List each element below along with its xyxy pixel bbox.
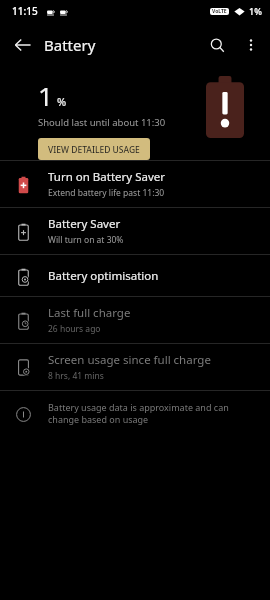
staticText: Extend battery life past 11:30 bbox=[48, 187, 165, 199]
staticText: Will turn on at 30% bbox=[48, 234, 124, 246]
button[interactable]: VIEW DETAILED USAGE bbox=[38, 138, 150, 160]
staticText: Battery Saver bbox=[48, 216, 121, 232]
staticText: 1 bbox=[38, 78, 53, 113]
button[interactable]: More options bbox=[234, 28, 268, 62]
button[interactable]: Screen usage since full charge bbox=[0, 344, 270, 390]
button[interactable]: Search bbox=[200, 28, 234, 62]
button[interactable]: Battery optimisation bbox=[0, 255, 270, 296]
button[interactable]: Back bbox=[6, 28, 40, 62]
staticText: Screen usage since full charge bbox=[48, 352, 211, 368]
button[interactable]: Turn on Battery Saver bbox=[0, 161, 270, 207]
staticText: Battery optimisation bbox=[48, 268, 159, 284]
staticText: % bbox=[57, 94, 67, 109]
staticText: VIEW DETAILED USAGE bbox=[48, 144, 140, 154]
staticText: 1% bbox=[249, 5, 262, 17]
staticText: Battery bbox=[44, 35, 96, 55]
staticText: Last full charge bbox=[48, 305, 131, 321]
staticText: Turn on Battery Saver bbox=[48, 169, 165, 185]
staticText: VoLTE bbox=[212, 8, 227, 15]
staticText: Battery usage data is approximate and ca… bbox=[48, 401, 256, 426]
button[interactable]: Battery Saver bbox=[0, 208, 270, 254]
staticText: 26 hours ago bbox=[48, 323, 101, 335]
button[interactable]: Last full charge bbox=[0, 297, 270, 343]
staticText: 8 hrs, 41 mins bbox=[48, 370, 104, 382]
staticText: Should last until about 11:30 bbox=[38, 116, 166, 129]
staticText: 11:15 bbox=[12, 4, 38, 18]
